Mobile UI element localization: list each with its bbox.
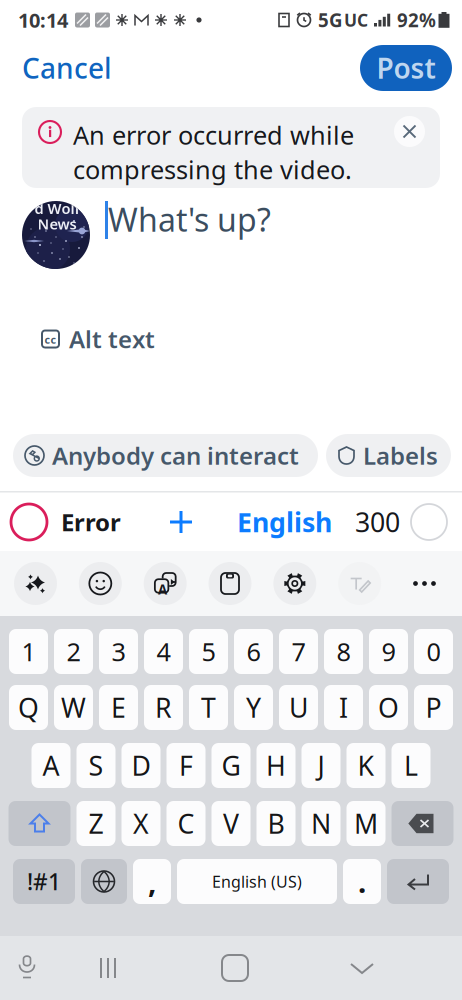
- staticText: UC: [344, 8, 368, 31]
- staticText: 7: [291, 635, 305, 668]
- staticText: M: [354, 806, 378, 841]
- button[interactable]: X: [121, 801, 160, 846]
- button[interactable]: Y: [234, 685, 273, 730]
- button[interactable]: O: [369, 685, 408, 730]
- button[interactable]: D: [121, 743, 160, 788]
- staticText: A: [158, 580, 167, 598]
- staticText: T: [201, 690, 216, 725]
- button[interactable]: 4: [144, 629, 183, 674]
- button[interactable]: T: [189, 685, 228, 730]
- button[interactable]: cc: [0, 317, 171, 361]
- button[interactable]: C: [166, 801, 205, 846]
- button[interactable]: 5: [189, 629, 228, 674]
- button[interactable]: Home: [204, 937, 266, 999]
- button[interactable]: K: [346, 743, 385, 788]
- button[interactable]: Magic: [14, 562, 57, 605]
- button[interactable]: Voice input: [0, 937, 58, 999]
- button[interactable]: V: [211, 801, 250, 846]
- staticText: K: [357, 748, 374, 783]
- staticText: I: [339, 690, 348, 725]
- button[interactable]: Delete: [391, 801, 453, 846]
- button[interactable]: English (US): [177, 859, 337, 904]
- button[interactable]: L: [391, 743, 430, 788]
- button[interactable]: Cancel: [0, 41, 126, 95]
- staticText: 6: [246, 635, 260, 668]
- button[interactable]: 3: [99, 629, 138, 674]
- button[interactable]: S: [76, 743, 115, 788]
- button[interactable]: Recent apps: [77, 937, 139, 999]
- button[interactable]: 9: [369, 629, 408, 674]
- button[interactable]: !#1: [13, 859, 75, 904]
- staticText: !#1: [27, 866, 61, 896]
- button[interactable]: P: [414, 685, 453, 730]
- staticText: U: [289, 690, 308, 725]
- button[interactable]: H: [256, 743, 295, 788]
- staticText: D: [131, 748, 150, 783]
- button[interactable]: U: [279, 685, 318, 730]
- button[interactable]: J: [301, 743, 340, 788]
- staticText: Labels: [363, 440, 438, 471]
- button[interactable]: N: [301, 801, 340, 846]
- button[interactable]: Settings: [273, 562, 316, 605]
- button[interactable]: Add post: [158, 499, 204, 545]
- staticText: O: [378, 690, 399, 725]
- staticText: d Wolf: [34, 198, 79, 218]
- button[interactable]: Anybody can interact: [13, 434, 318, 477]
- staticText: English (US): [212, 871, 302, 892]
- button[interactable]: 2: [54, 629, 93, 674]
- staticText: W: [61, 690, 86, 725]
- staticText: ,: [148, 862, 156, 901]
- staticText: 300: [355, 504, 400, 540]
- button[interactable]: Error: [0, 495, 131, 549]
- button[interactable]: 0: [414, 629, 453, 674]
- staticText: 92%: [397, 8, 436, 32]
- staticText: Error: [61, 506, 121, 538]
- button[interactable]: Z: [76, 801, 115, 846]
- button[interactable]: Labels: [326, 434, 451, 477]
- button[interactable]: Post: [360, 45, 452, 91]
- button[interactable]: E: [99, 685, 138, 730]
- staticText: Cancel: [22, 49, 112, 87]
- button[interactable]: M: [346, 801, 385, 846]
- staticText: H: [266, 748, 286, 783]
- button[interactable]: Clipboard: [208, 562, 251, 605]
- button[interactable]: F: [166, 743, 205, 788]
- button[interactable]: Translate: [144, 562, 187, 605]
- button[interactable]: I: [324, 685, 363, 730]
- button[interactable]: W: [54, 685, 93, 730]
- button[interactable]: 6: [234, 629, 273, 674]
- button[interactable]: More options: [403, 562, 446, 605]
- button[interactable]: 7: [279, 629, 318, 674]
- staticText: V: [223, 806, 239, 841]
- button[interactable]: G: [211, 743, 250, 788]
- staticText: B: [267, 806, 284, 841]
- staticText: L: [404, 748, 418, 783]
- button[interactable]: R: [144, 685, 183, 730]
- button[interactable]: ,: [133, 859, 171, 904]
- staticText: A: [42, 748, 59, 783]
- button[interactable]: Handwriting: [338, 562, 381, 605]
- button[interactable]: 1: [9, 629, 48, 674]
- staticText: R: [155, 690, 172, 725]
- staticText: E: [111, 690, 126, 725]
- button[interactable]: .: [343, 859, 381, 904]
- staticText: 1: [21, 635, 35, 668]
- button[interactable]: A: [31, 743, 70, 788]
- button[interactable]: Dismiss error: [394, 116, 425, 147]
- staticText: 2: [66, 635, 80, 668]
- button[interactable]: English: [231, 495, 338, 549]
- button[interactable]: Shift: [8, 801, 70, 846]
- button[interactable]: Q: [9, 685, 48, 730]
- staticText: F: [179, 748, 193, 783]
- button[interactable]: Return: [387, 859, 449, 904]
- staticText: N: [311, 806, 331, 841]
- staticText: S: [88, 748, 103, 783]
- staticText: Q: [18, 690, 39, 725]
- button[interactable]: Emoji: [79, 562, 122, 605]
- button[interactable]: Hide keyboard: [331, 937, 393, 999]
- staticText: 3: [111, 635, 125, 668]
- button[interactable]: 8: [324, 629, 363, 674]
- button[interactable]: B: [256, 801, 295, 846]
- staticText: Y: [246, 690, 261, 725]
- button[interactable]: Language: [81, 859, 127, 904]
